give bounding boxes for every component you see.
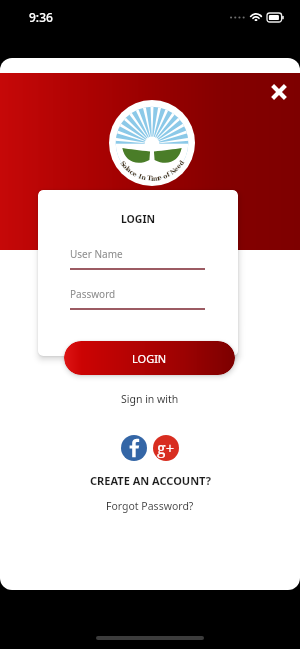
button[interactable]: Sign in with Facebook — [118, 432, 150, 464]
staticText: LOGIN — [38, 212, 238, 226]
button[interactable]: Password — [70, 287, 205, 310]
button[interactable]: Close — [265, 78, 293, 106]
staticText: LOGIN — [132, 351, 167, 366]
button[interactable]: Forgot Password? — [0, 499, 300, 513]
button[interactable]: CREATE AN ACCOUNT? — [0, 473, 300, 488]
button[interactable]: Sign in with Google Plus — [150, 432, 182, 464]
button[interactable]: User Name — [70, 247, 205, 270]
staticText: Password — [70, 287, 116, 301]
staticText: 9:36 — [29, 9, 53, 25]
staticText: g+ — [157, 437, 175, 459]
staticText: CREATE AN ACCOUNT? — [90, 473, 211, 488]
staticText: Forgot Password? — [106, 499, 194, 513]
button[interactable]: LOGIN — [64, 341, 235, 375]
staticText: Sign in with — [121, 392, 179, 406]
staticText: User Name — [70, 247, 123, 261]
